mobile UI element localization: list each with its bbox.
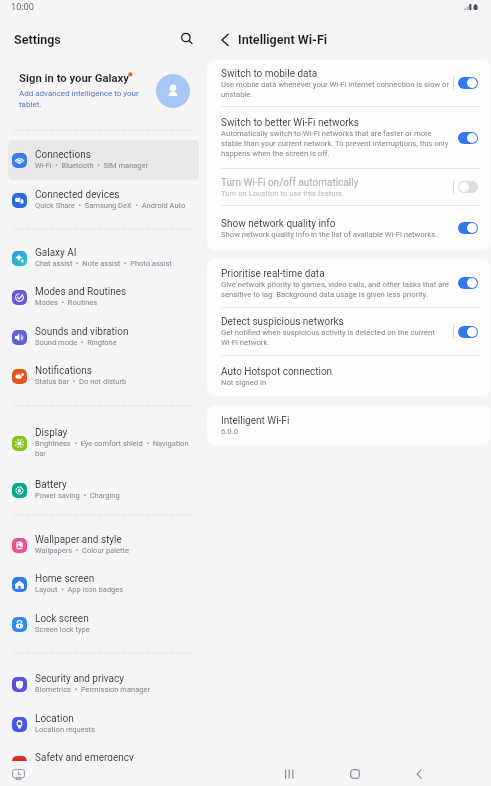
staticText: Wallpapers • Colour palette <box>35 546 129 555</box>
button[interactable]: On <box>458 77 478 89</box>
staticText: Location <box>35 713 74 725</box>
staticText: Switch to better Wi-Fi networks <box>221 117 359 129</box>
button[interactable]: Back <box>397 761 441 786</box>
button[interactable]: Samsung account <box>156 74 190 108</box>
staticText: Use mobile data whenever your Wi-Fi inte… <box>221 80 452 99</box>
staticText: Show network quality info <box>221 218 336 230</box>
staticText: Auto Hotspot connection <box>221 366 333 378</box>
button[interactable]: Display <box>8 416 199 470</box>
staticText: Layout • App icon badges <box>35 585 124 594</box>
button[interactable]: Home <box>333 761 377 786</box>
staticText: Sounds and vibration <box>35 326 129 338</box>
button[interactable]: Location <box>8 704 199 744</box>
button[interactable]: Notifications <box>8 356 199 396</box>
button[interactable]: Prioritise real-time data <box>207 259 490 307</box>
staticText: Lock screen <box>35 613 89 625</box>
staticText: Modes • Routines <box>35 298 98 307</box>
button[interactable]: Modes and Routines <box>8 277 199 317</box>
button[interactable]: Security and privacy <box>8 664 199 704</box>
staticText: Biometrics • Permission manager <box>35 685 150 694</box>
button[interactable]: Search <box>175 27 199 51</box>
staticText: Not signed in <box>221 378 267 387</box>
staticText: Show network quality info in the list of… <box>221 230 438 239</box>
button[interactable]: Screenshot <box>9 765 28 784</box>
staticText: Give network priority to games, video ca… <box>221 280 452 299</box>
button[interactable]: On <box>458 277 478 289</box>
staticText: Safety and emergency <box>35 752 134 764</box>
staticText: Power saving • Charging <box>35 491 120 500</box>
staticText: Automatically switch to Wi-Fi networks t… <box>221 129 452 158</box>
staticText: Intelligent Wi-Fi <box>238 32 328 47</box>
button[interactable]: Recent apps <box>267 761 311 786</box>
staticText: Status bar • Do not disturb <box>35 377 127 386</box>
button[interactable]: Wallpaper and style <box>8 525 199 565</box>
staticText: Chat assist • Note assist • Photo assist <box>35 259 172 268</box>
staticText: Turn Wi-Fi on/off automatically <box>221 177 359 189</box>
button[interactable]: Lock screen <box>8 604 199 644</box>
button[interactable]: Safety and emergency <box>8 743 199 783</box>
button[interactable]: Sounds and vibration <box>8 317 199 357</box>
button[interactable]: Switch to mobile data <box>207 60 490 106</box>
staticText: Turn on Location to use this feature. <box>221 189 345 198</box>
staticText: Get notified when suspicious activity is… <box>221 328 452 347</box>
button[interactable]: Home screen <box>8 564 199 604</box>
staticText: Security and privacy <box>35 673 124 685</box>
button[interactable]: On <box>458 132 478 144</box>
button[interactable]: Off <box>458 181 478 193</box>
staticText: Settings <box>14 32 61 47</box>
button[interactable]: Switch to better Wi-Fi networks <box>207 107 490 168</box>
staticText: Wallpaper and style <box>35 534 122 546</box>
staticText: Display <box>35 427 68 439</box>
staticText: Modes and Routines <box>35 286 127 298</box>
button[interactable]: Battery <box>8 470 199 510</box>
button[interactable]: Auto Hotspot connection <box>207 356 490 396</box>
staticText: Add advanced intelligence to your tablet… <box>19 89 139 109</box>
button[interactable]: Detect suspicious networks <box>207 308 490 355</box>
button[interactable]: Connections <box>8 140 199 180</box>
button[interactable]: Show network quality info <box>207 206 490 250</box>
staticText: Notifications <box>35 365 92 377</box>
staticText: Location requests <box>35 725 95 734</box>
staticText: Home screen <box>35 573 95 585</box>
staticText: Sign in to your Galaxy <box>19 72 130 85</box>
button[interactable]: Sign in to your Galaxy <box>0 62 205 118</box>
staticText: Connected devices <box>35 189 120 201</box>
button[interactable]: Intelligent Wi-Fi <box>207 405 490 445</box>
staticText: Battery <box>35 479 67 491</box>
button[interactable]: Turn Wi-Fi on/off automatically <box>207 169 490 205</box>
staticText: Switch to mobile data <box>221 68 318 80</box>
staticText: Connections <box>35 149 91 161</box>
button[interactable]: Connected devices <box>8 180 199 220</box>
staticText: Wi-Fi • Bluetooth • SIM manager <box>35 161 149 170</box>
staticText: 10:00 <box>11 1 34 12</box>
staticText: 6.0.0 <box>221 427 239 436</box>
staticText: Galaxy AI <box>35 247 77 259</box>
staticText: Prioritise real-time data <box>221 268 325 280</box>
button[interactable]: On <box>458 222 478 234</box>
button[interactable]: Navigate up <box>214 29 236 51</box>
staticText: Brightness • Eye comfort shield • Naviga… <box>35 439 195 458</box>
staticText: Detect suspicious networks <box>221 316 344 328</box>
button[interactable]: On <box>458 326 478 338</box>
staticText: Sound mode • Ringtone <box>35 338 117 347</box>
staticText: Quick Share • Samsung DeX • Android Auto <box>35 201 186 210</box>
staticText: Screen lock type <box>35 625 90 634</box>
button[interactable]: Galaxy AI <box>8 238 199 278</box>
staticText: Intelligent Wi-Fi <box>221 415 290 427</box>
